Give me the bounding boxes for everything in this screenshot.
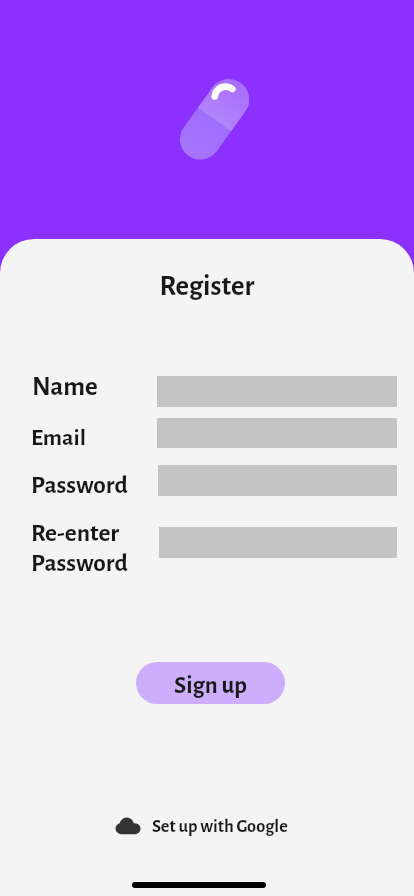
button[interactable]: Set up with Google — [110, 815, 288, 837]
other: Set up with Google — [110, 815, 140, 837]
staticText: Re-enter Password — [31, 521, 128, 576]
button[interactable]: Sign up — [136, 662, 285, 704]
staticText: Sign up — [174, 673, 247, 698]
staticText: Set up with Google — [152, 817, 288, 835]
staticText: Password — [31, 473, 128, 498]
staticText: Register — [0, 272, 414, 301]
staticText: Name — [32, 373, 98, 400]
staticText: Email — [31, 426, 86, 450]
